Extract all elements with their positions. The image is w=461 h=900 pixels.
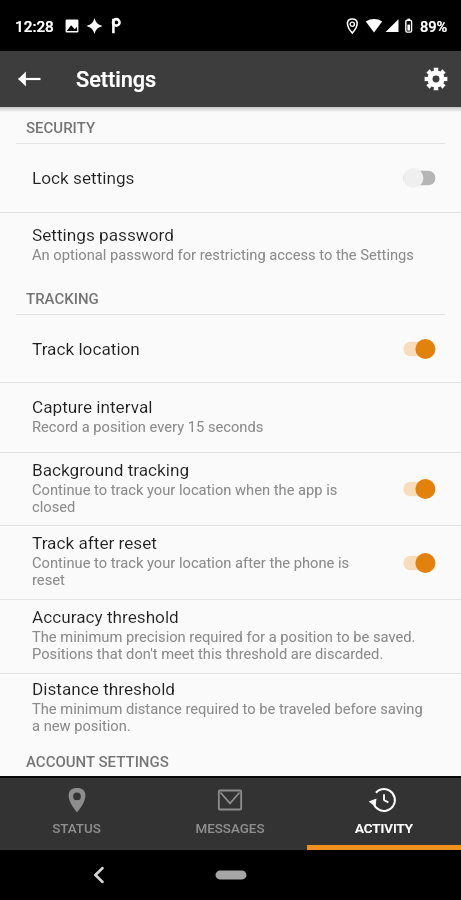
- staticText: Settings: [76, 67, 157, 92]
- button[interactable]: Background tracking: [403, 453, 461, 525]
- staticText: Continue to track your location after th…: [32, 554, 350, 589]
- button[interactable]: Lock settings: [0, 144, 461, 212]
- staticText: TRACKING: [26, 290, 99, 308]
- staticText: Accuracy threshold: [32, 607, 179, 627]
- button[interactable]: Capture interval: [0, 383, 461, 452]
- button[interactable]: Track after reset: [403, 526, 461, 599]
- button[interactable]: Home: [201, 860, 261, 890]
- staticText: MESSAGES: [195, 821, 265, 837]
- staticText: The minimum distance required to be trav…: [32, 700, 423, 735]
- button[interactable]: Accuracy threshold: [0, 600, 461, 673]
- staticText: ACCOUNT SETTINGS: [26, 753, 169, 771]
- staticText: 12:28: [15, 18, 54, 36]
- button[interactable]: STATUS: [0, 778, 153, 850]
- button[interactable]: Track location: [0, 315, 461, 382]
- staticText: 89%: [420, 18, 448, 35]
- button[interactable]: Background tracking: [0, 453, 461, 525]
- button[interactable]: Settings: [410, 51, 461, 107]
- staticText: Record a position every 15 seconds: [32, 418, 264, 435]
- button[interactable]: Back: [82, 858, 116, 892]
- button[interactable]: Distance threshold: [0, 674, 461, 743]
- staticText: SECURITY: [26, 119, 96, 137]
- staticText: Background tracking: [32, 460, 190, 480]
- staticText: Continue to track your location when the…: [32, 481, 338, 516]
- button[interactable]: ACTIVITY: [307, 778, 461, 850]
- staticText: Track location: [32, 339, 140, 359]
- staticText: An optional password for restricting acc…: [32, 246, 414, 263]
- staticText: Lock settings: [32, 168, 135, 188]
- staticText: Track after reset: [32, 533, 157, 553]
- button[interactable]: Settings password: [0, 213, 461, 278]
- staticText: ACTIVITY: [355, 821, 413, 837]
- staticText: Capture interval: [32, 397, 153, 417]
- button[interactable]: Track location: [403, 315, 461, 382]
- staticText: The minimum precision required for a pos…: [32, 628, 416, 663]
- staticText: STATUS: [52, 821, 101, 837]
- staticText: Distance threshold: [32, 679, 176, 699]
- button[interactable]: Track after reset: [0, 526, 461, 599]
- button[interactable]: Navigate up: [0, 51, 58, 107]
- button[interactable]: Lock settings: [403, 144, 461, 212]
- staticText: Settings password: [32, 225, 174, 245]
- button[interactable]: MESSAGES: [153, 778, 307, 850]
